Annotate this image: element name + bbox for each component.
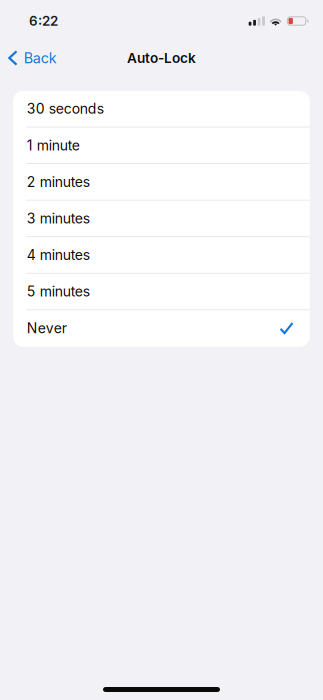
- staticText: 3 minutes: [27, 210, 90, 227]
- button[interactable]: 5 minutes: [13, 274, 310, 310]
- button[interactable]: 4 minutes: [13, 237, 310, 274]
- staticText: 1 minute: [27, 137, 80, 154]
- button[interactable]: Never: [13, 310, 310, 347]
- button[interactable]: Back: [0, 43, 67, 73]
- staticText: Never: [27, 320, 67, 336]
- staticText: 30 seconds: [27, 100, 104, 117]
- button[interactable]: 3 minutes: [13, 201, 310, 237]
- button[interactable]: 1 minute: [13, 127, 310, 164]
- staticText: 4 minutes: [27, 246, 90, 263]
- button[interactable]: 30 seconds: [13, 91, 310, 127]
- staticText: Back: [24, 49, 57, 67]
- staticText: 5 minutes: [27, 283, 90, 300]
- staticText: Auto-Lock: [127, 50, 196, 66]
- staticText: 6:22: [29, 13, 58, 29]
- staticText: 2 minutes: [27, 173, 90, 190]
- button[interactable]: 2 minutes: [13, 164, 310, 200]
